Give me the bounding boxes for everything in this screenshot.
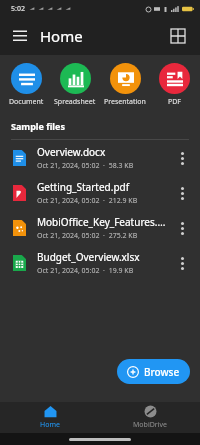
staticText: Sample files xyxy=(11,120,65,132)
button[interactable]: MobiOffice_Key_Features.ppsx xyxy=(0,210,200,245)
staticText: MobiDrive xyxy=(133,420,168,430)
staticText: Oct 21, 2024, 05:02 · 212.9 KB xyxy=(37,196,138,206)
button[interactable]: Browse xyxy=(117,359,190,384)
staticText: Presentation xyxy=(104,97,146,107)
button[interactable]: Grid view xyxy=(164,22,192,50)
staticText: MobiOffice_Key_Features.ppsx xyxy=(37,215,170,229)
button[interactable]: Home xyxy=(0,404,100,431)
staticText: Getting_Started.pdf xyxy=(37,180,130,194)
staticText: Home xyxy=(40,420,60,430)
staticText: Spreadsheet xyxy=(54,97,96,107)
button[interactable]: More options for MobiOffice_Key_Features… xyxy=(170,216,194,240)
staticText: Oct 21, 2024, 05:02 · 19.9 KB xyxy=(37,266,134,276)
staticText: Overview.docx xyxy=(37,145,106,159)
button[interactable]: More options for Budget_Overview.xlsx xyxy=(170,251,194,275)
button[interactable]: MobiDrive xyxy=(100,404,200,431)
button[interactable]: Getting_Started.pdf xyxy=(0,175,200,210)
staticText: 5:02 xyxy=(11,4,25,14)
button[interactable]: Open navigation menu xyxy=(6,22,34,50)
button[interactable]: More options for Getting_Started.pdf xyxy=(170,181,194,205)
staticText: Oct 21, 2024, 05:02 · 275.2 KB xyxy=(37,231,138,241)
button[interactable]: PDF xyxy=(150,62,198,108)
button[interactable]: Presentation xyxy=(101,62,149,108)
staticText: Document xyxy=(9,97,44,107)
staticText: Home xyxy=(40,26,83,46)
staticText: PDF xyxy=(168,97,181,107)
staticText: Oct 21, 2024, 05:02 · 58.3 KB xyxy=(37,161,134,171)
staticText: Browse xyxy=(144,365,180,379)
button[interactable]: Budget_Overview.xlsx xyxy=(0,245,200,280)
button[interactable]: Spreadsheet xyxy=(51,62,99,108)
staticText: Budget_Overview.xlsx xyxy=(37,250,140,264)
button[interactable]: More options for Overview.docx xyxy=(170,146,194,170)
button[interactable]: Document xyxy=(2,62,50,108)
button[interactable]: Overview.docx xyxy=(0,140,200,175)
